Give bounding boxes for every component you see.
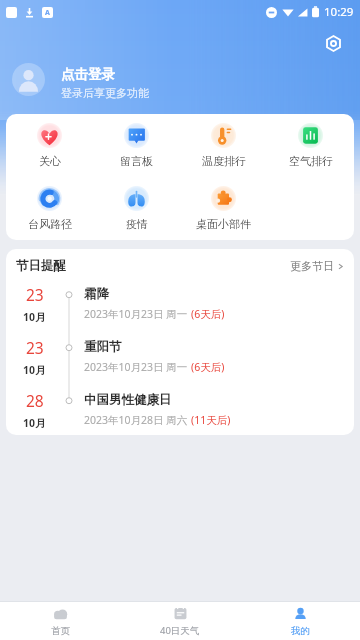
- button[interactable]: 首页: [0, 602, 120, 640]
- staticText: 重阳节: [84, 339, 122, 355]
- button[interactable]: 温度排行: [180, 114, 267, 177]
- staticText: 我的: [291, 625, 310, 637]
- staticText: 台风路径: [28, 217, 72, 231]
- staticText: 2023年10月23日 周一: [84, 307, 191, 321]
- button[interactable]: 我的: [240, 602, 360, 640]
- button[interactable]: 留言板: [93, 114, 180, 177]
- staticText: 首页: [51, 625, 70, 637]
- staticText: 10月: [23, 310, 46, 324]
- staticText: 温度排行: [202, 154, 246, 168]
- staticText: 2023年10月28日 周六: [84, 413, 191, 427]
- staticText: 10月: [23, 416, 46, 430]
- staticText: 28: [26, 390, 44, 411]
- button[interactable]: 28: [6, 382, 354, 435]
- staticText: 空气排行: [289, 154, 333, 168]
- staticText: (6天后): [191, 307, 225, 321]
- button[interactable]: 更多节日: [290, 256, 344, 276]
- staticText: 点击登录: [61, 66, 115, 83]
- staticText: A: [45, 8, 50, 18]
- staticText: 23: [26, 337, 44, 358]
- staticText: 关心: [39, 154, 61, 168]
- staticText: 中国男性健康日: [84, 392, 172, 408]
- staticText: 疫情: [126, 217, 148, 231]
- button[interactable]: 23: [6, 276, 354, 329]
- staticText: 登录后享更多功能: [61, 86, 149, 100]
- staticText: 留言板: [120, 154, 153, 168]
- staticText: 10月: [23, 363, 46, 377]
- button[interactable]: 点击登录: [12, 65, 149, 100]
- button[interactable]: 空气排行: [267, 114, 354, 177]
- staticText: (6天后): [191, 360, 225, 374]
- staticText: 霜降: [84, 286, 109, 302]
- staticText: (11天后): [191, 413, 231, 427]
- button[interactable]: 桌面小部件: [180, 177, 267, 240]
- button[interactable]: 40日天气: [120, 602, 240, 640]
- staticText: 节日提醒: [16, 258, 66, 274]
- button[interactable]: Settings: [318, 28, 348, 58]
- button[interactable]: 台风路径: [6, 177, 93, 240]
- staticText: 桌面小部件: [196, 217, 251, 231]
- staticText: 更多节日: [290, 259, 334, 273]
- button[interactable]: 疫情: [93, 177, 180, 240]
- staticText: 2023年10月23日 周一: [84, 360, 191, 374]
- staticText: 10:29: [324, 4, 354, 20]
- staticText: 23: [26, 284, 44, 305]
- button[interactable]: 关心: [6, 114, 93, 177]
- button[interactable]: 23: [6, 329, 354, 382]
- staticText: 40日天气: [160, 624, 200, 637]
